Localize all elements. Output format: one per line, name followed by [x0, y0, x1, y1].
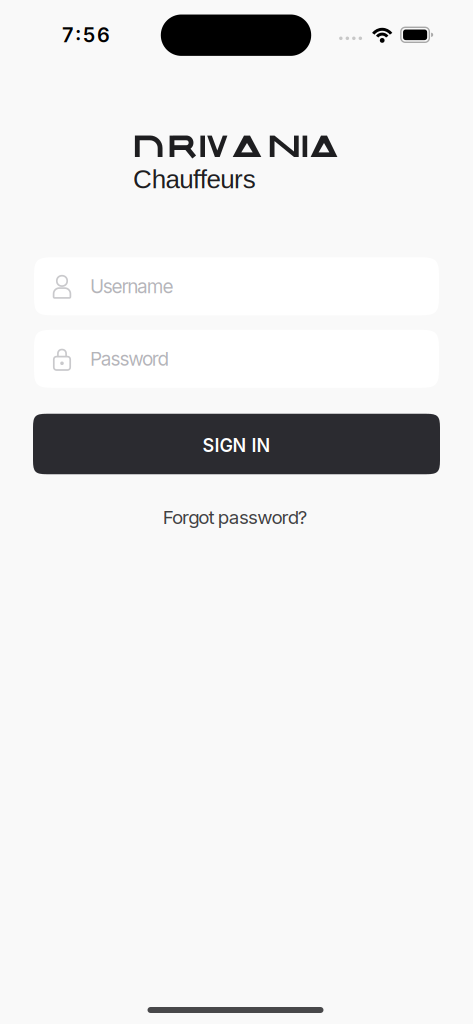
button[interactable]: Password — [34, 330, 439, 388]
staticText: Username — [90, 275, 174, 298]
button[interactable]: SIGN IN — [33, 414, 440, 474]
staticText: Chauffeurs — [133, 165, 256, 194]
button[interactable]: Forgot password? — [163, 506, 308, 529]
staticText: Forgot password? — [163, 506, 308, 529]
button[interactable]: Username — [34, 257, 439, 315]
staticText: Password — [90, 347, 170, 370]
staticText: SIGN IN — [202, 435, 270, 456]
staticText: 7 : 5 6 — [62, 23, 110, 47]
